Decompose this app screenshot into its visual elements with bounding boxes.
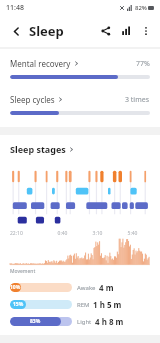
button[interactable]: 15% [10,299,150,310]
staticText: 22:10 [10,230,45,237]
button[interactable]: Sleep cycles [10,94,150,115]
button[interactable]: Back [6,21,26,41]
staticText: 1 h 5 m [93,299,122,310]
staticText: Sleep cycles [10,94,55,105]
staticText: 4 m [99,282,114,293]
staticText: 0:40 [45,230,80,237]
staticText: 15% [13,301,24,308]
staticText: 10% [10,284,21,291]
button[interactable]: Sleep stages [10,143,74,155]
staticText: 11:48 [6,3,24,13]
staticText: 83% [30,318,41,325]
staticText: Mental recovery [10,58,71,69]
staticText: 77% [136,59,150,69]
staticText: 3 times [125,95,150,105]
button[interactable]: Mental recovery [10,58,150,79]
button[interactable]: Statistics [116,21,136,41]
button[interactable]: More options [136,21,156,41]
button[interactable]: Share [96,21,116,41]
staticText: Light [77,318,92,326]
staticText: 3:10 [80,230,115,237]
staticText: Sleep stages [10,143,66,155]
staticText: 82% [135,4,147,12]
staticText: 5:40 [115,230,150,237]
staticText: Awake [77,284,96,292]
staticText: Movement [10,268,36,275]
staticText: REM [77,301,90,309]
staticText: Sleep [29,22,64,40]
button[interactable]: 10% [10,282,150,293]
staticText: 4 h 8 m [95,316,124,327]
button[interactable]: 83% [10,316,150,327]
